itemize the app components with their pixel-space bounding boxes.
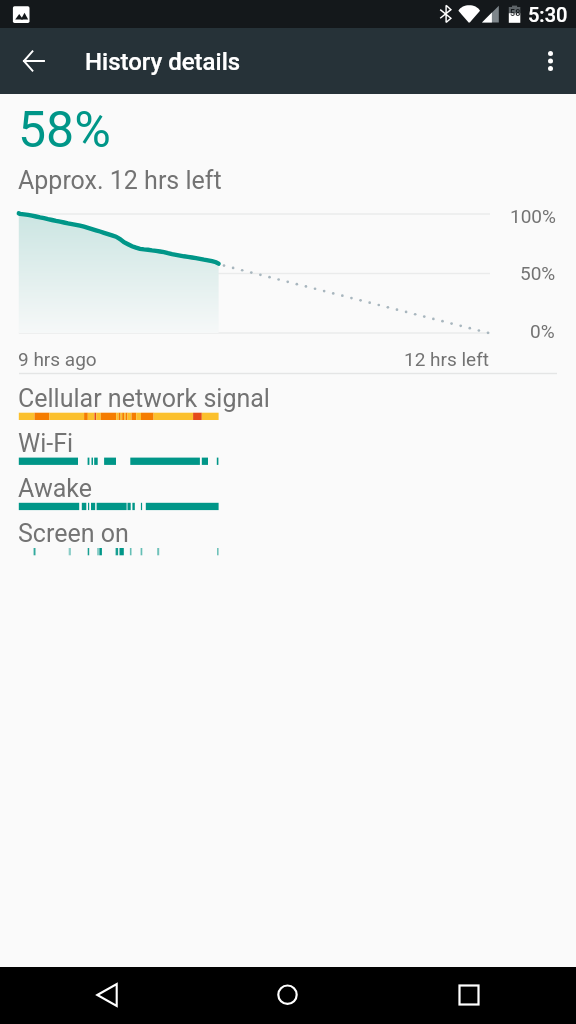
button[interactable]: Navigate up [10, 38, 56, 84]
staticText: 50% [520, 262, 556, 284]
staticText: 58 [510, 8, 521, 19]
staticText: 5:30 [528, 3, 568, 26]
staticText: Approx. 12 hrs left [18, 166, 222, 195]
button[interactable]: Recent apps [419, 967, 519, 1024]
button[interactable]: Home [237, 967, 337, 1024]
button[interactable]: Back [57, 967, 157, 1024]
staticText: 12 hrs left [404, 348, 490, 370]
staticText: 0% [530, 320, 555, 342]
staticText: 9 hrs ago [18, 348, 97, 370]
staticText: Awake [18, 474, 92, 503]
staticText: 100% [510, 205, 556, 227]
button[interactable]: More options [527, 38, 573, 84]
staticText: Screen on [18, 519, 129, 548]
staticText: Wi-Fi [18, 429, 74, 458]
staticText: Cellular network signal [18, 384, 270, 413]
staticText: History details [85, 48, 241, 76]
staticText: 58% [18, 101, 111, 160]
